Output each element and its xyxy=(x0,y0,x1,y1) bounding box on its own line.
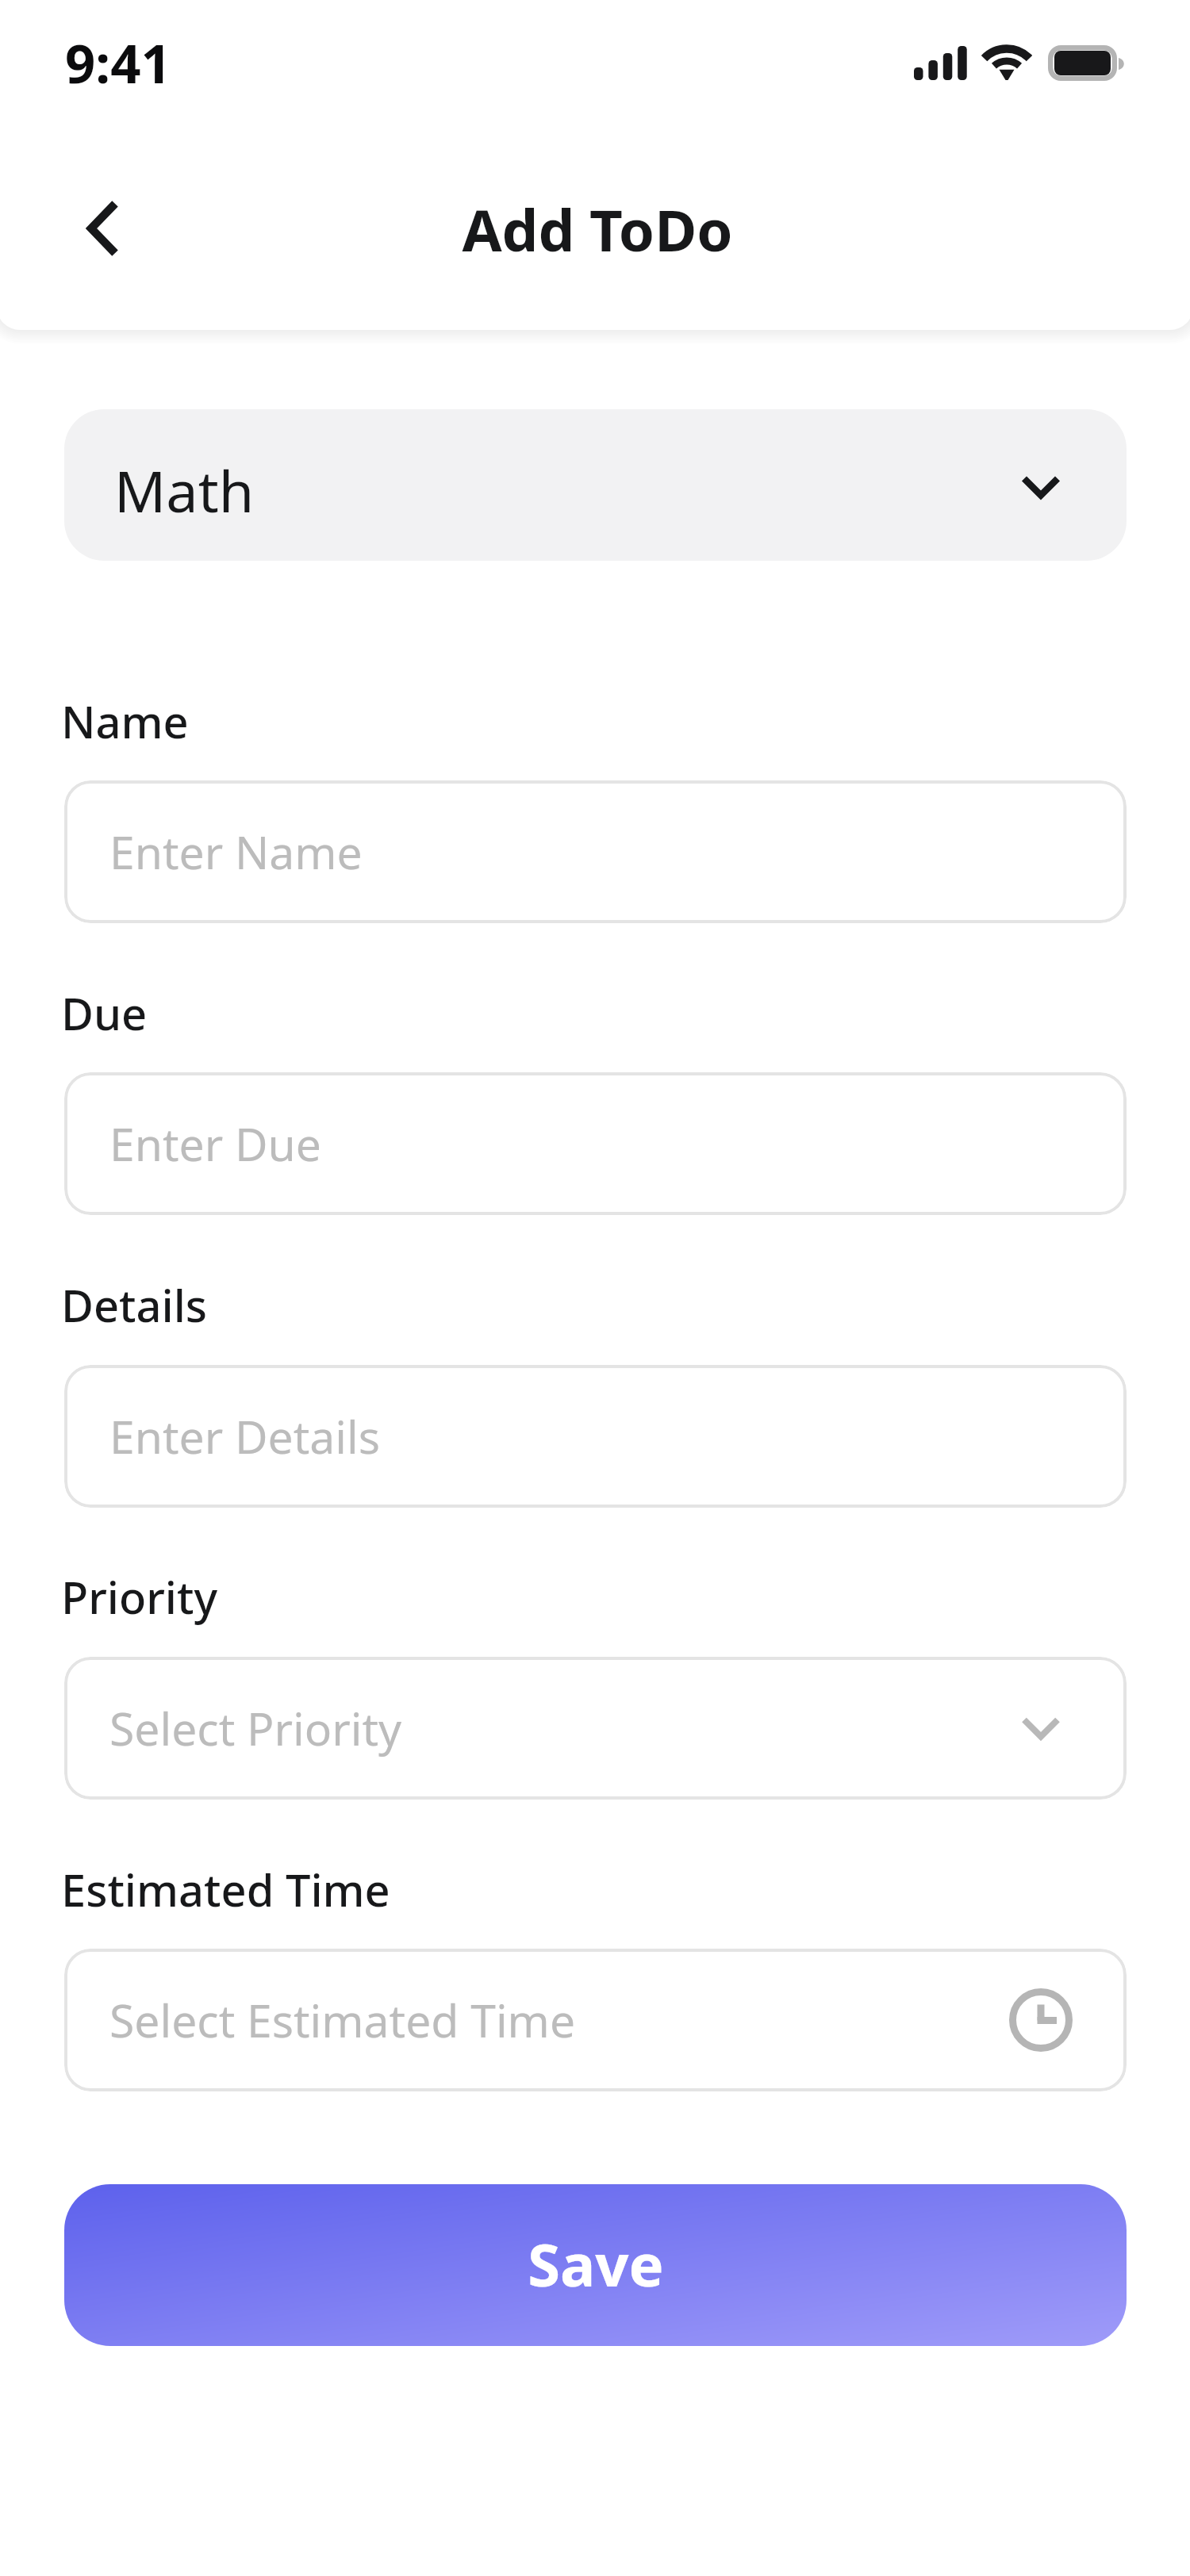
button[interactable]: Enter Name xyxy=(64,780,1127,923)
staticText: Estimated Time xyxy=(61,1859,390,1919)
staticText: Enter Details xyxy=(109,1405,381,1467)
button[interactable]: Select Estimated Time xyxy=(64,1949,1127,2091)
staticText: Details xyxy=(61,1275,208,1335)
button[interactable]: Back xyxy=(56,181,151,276)
staticText: 9:41 xyxy=(65,26,171,98)
staticText: Enter Name xyxy=(109,821,363,883)
button[interactable]: Math xyxy=(64,409,1127,561)
button[interactable]: Enter Due xyxy=(64,1072,1127,1215)
staticText: Enter Due xyxy=(109,1113,321,1175)
button[interactable]: Enter Details xyxy=(64,1365,1127,1508)
staticText: Save xyxy=(528,2224,664,2304)
button[interactable]: Save xyxy=(64,2184,1127,2346)
staticText: Name xyxy=(61,691,189,751)
staticText: Priority xyxy=(61,1566,218,1627)
staticText: Math xyxy=(114,451,255,529)
staticText: Due xyxy=(61,983,148,1043)
button[interactable]: Select Priority xyxy=(64,1657,1127,1800)
staticText: Select Estimated Time xyxy=(109,1989,576,2051)
staticText: Select Priority xyxy=(109,1697,402,1759)
staticText: Add ToDo xyxy=(2,190,1190,268)
